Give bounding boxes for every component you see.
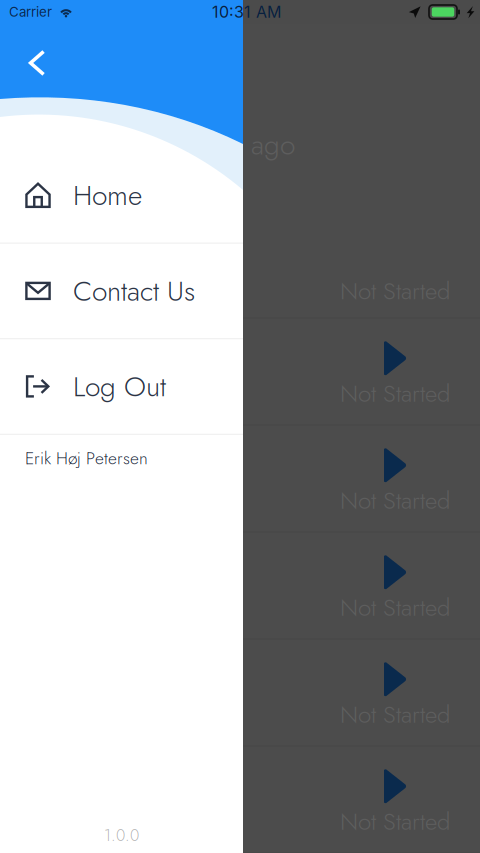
staticText: Carrier <box>9 4 52 20</box>
button[interactable]: Log Out <box>0 339 243 435</box>
staticText: Contact Us <box>73 271 195 311</box>
staticText: Home <box>73 175 142 216</box>
staticText: Not Started <box>340 483 450 518</box>
staticText: Not Started <box>340 697 450 732</box>
button[interactable]: Home <box>0 148 243 244</box>
staticText: Not Started <box>340 804 450 839</box>
staticText: Log Out <box>73 366 166 407</box>
staticText: Not Started <box>340 590 450 625</box>
staticText: Not Started <box>340 273 450 308</box>
staticText: ago <box>251 124 295 165</box>
button[interactable]: Back <box>15 41 59 85</box>
staticText: Erik Høj Petersen <box>25 446 148 471</box>
staticText: 1.0.0 <box>104 824 139 847</box>
staticText: 10:31 AM <box>212 2 281 22</box>
button[interactable]: Contact Us <box>0 244 243 339</box>
staticText: Not Started <box>340 376 450 411</box>
